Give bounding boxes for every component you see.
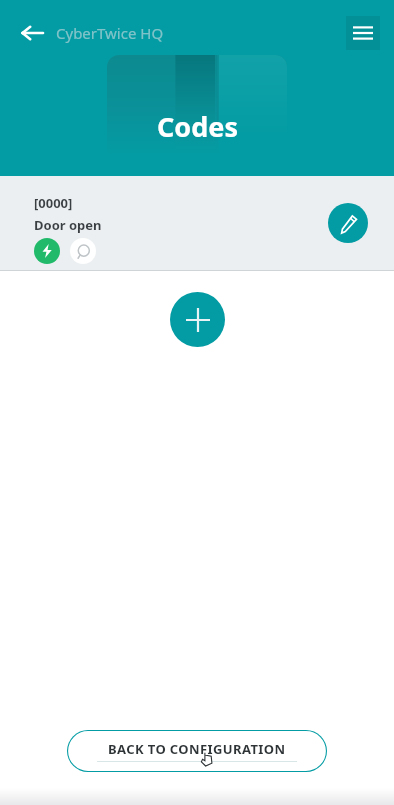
- button[interactable]: BACK TO CONFIGURATION: [67, 730, 327, 772]
- button[interactable]: Menu: [346, 16, 380, 50]
- staticText: CyberTwice HQ: [56, 23, 164, 43]
- button[interactable]: Edit: [328, 203, 368, 243]
- button[interactable]: Back: [14, 15, 50, 51]
- staticText: Door open: [34, 216, 102, 234]
- staticText: [0000]: [34, 194, 73, 212]
- button[interactable]: Instant: [34, 238, 60, 264]
- button[interactable]: [0000]: [0, 176, 394, 270]
- button[interactable]: Message: [70, 238, 96, 264]
- staticText: Codes: [157, 108, 238, 145]
- staticText: BACK TO CONFIGURATION: [108, 740, 286, 758]
- button[interactable]: Add code: [170, 292, 225, 347]
